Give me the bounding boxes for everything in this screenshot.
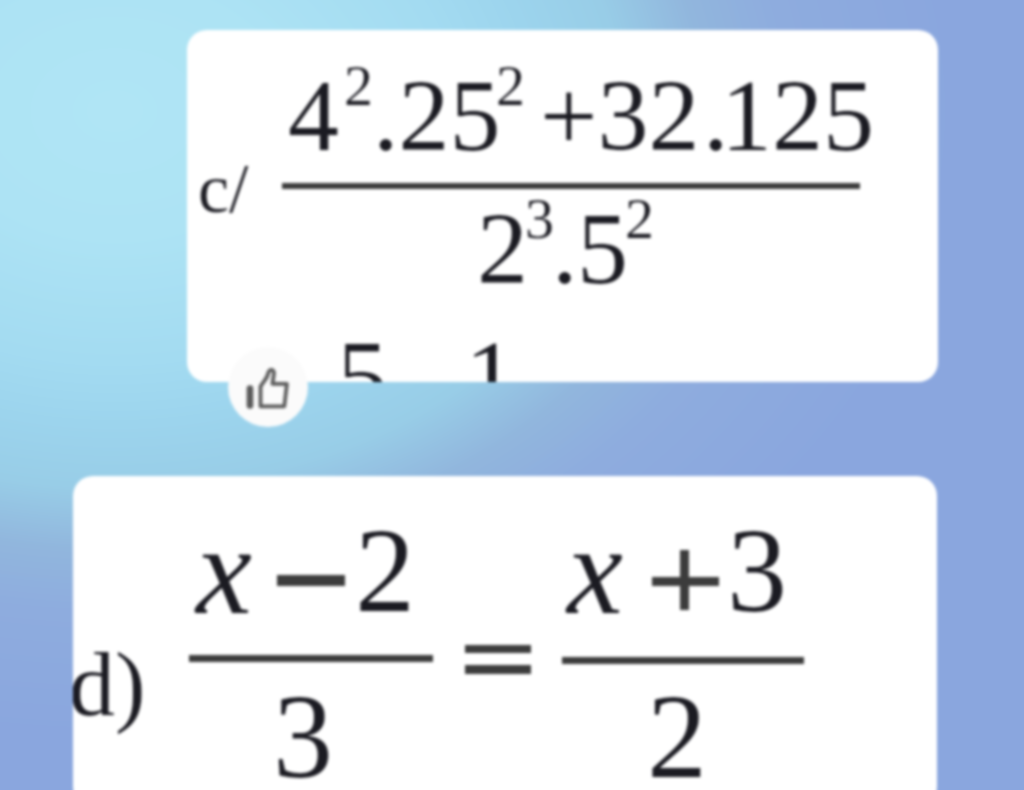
staticText: 2 xyxy=(344,53,373,117)
staticText: x xyxy=(196,501,252,641)
staticText: . xyxy=(703,59,729,172)
staticText: 4 xyxy=(288,59,339,172)
staticText: 2 xyxy=(496,53,525,117)
button[interactable]: d) xyxy=(73,476,937,790)
staticText: 5 xyxy=(337,320,388,382)
staticText: .25 xyxy=(373,59,501,172)
staticText: 2 xyxy=(477,192,528,305)
staticText: d) xyxy=(73,633,146,735)
staticText: 2 xyxy=(625,186,654,250)
staticText: 3 xyxy=(273,670,333,790)
staticText: 5 xyxy=(577,192,628,305)
staticText: c/ xyxy=(198,150,249,228)
staticText: 3 xyxy=(525,186,554,250)
staticText: 2 xyxy=(355,504,415,637)
staticText: 3 xyxy=(727,504,787,637)
staticText: 125 xyxy=(721,59,874,172)
staticText: 2 xyxy=(647,670,707,790)
button[interactable]: Like xyxy=(228,347,308,427)
staticText: 1 xyxy=(465,320,516,382)
staticText: x xyxy=(567,501,623,641)
button[interactable]: c/ xyxy=(187,30,938,382)
staticText: +32 xyxy=(540,59,700,172)
staticText: . xyxy=(552,192,578,305)
